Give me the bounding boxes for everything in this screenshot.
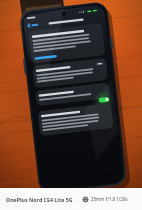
staticText: 25mm f/1.8 1/28s ISO320 (91, 196, 136, 202)
button[interactable]: Toggle setting (33, 127, 107, 143)
button[interactable] (32, 100, 106, 123)
button[interactable]: Back (28, 40, 50, 49)
staticText: OnePlus Nord CE4 Lite 5G (6, 196, 73, 203)
button[interactable] (34, 149, 108, 175)
button[interactable] (31, 63, 105, 96)
